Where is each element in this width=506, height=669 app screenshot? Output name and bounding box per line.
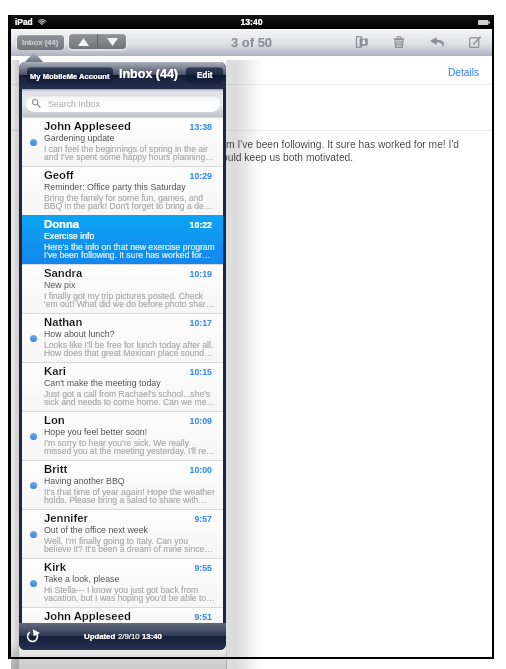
staticText: 9:57 (22, 514, 212, 524)
staticText: holds. Please bring a salad to share wit… (44, 495, 207, 505)
staticText: 10:17 (22, 318, 212, 328)
staticText: vacation, but I was hoping you'd be able… (44, 593, 215, 603)
staticText: 9:55 (22, 563, 212, 573)
staticText: Nathan (44, 316, 83, 329)
staticText: I can feel the beginnings of spring in t… (44, 144, 208, 154)
staticText: It's that time of year again! Hope the w… (44, 487, 215, 497)
staticText: Kari (44, 365, 66, 378)
staticText: 10:19 (22, 269, 212, 279)
staticText: 3 of 50 (11, 35, 492, 50)
staticText: 10:09 (22, 416, 212, 426)
staticText: 10:22 (22, 220, 212, 230)
staticText: 13:40 (11, 17, 492, 27)
staticText: John Appleseed (44, 610, 131, 623)
button[interactable]: Edit (186, 67, 223, 84)
staticText: Exercise info (44, 231, 95, 241)
staticText: Take a look, please (44, 574, 120, 584)
staticText: Looks like I'll be free for lunch today … (44, 340, 214, 350)
staticText: 9:51 (22, 612, 212, 622)
staticText: Kirk (44, 561, 66, 574)
staticText: iPad (15, 17, 33, 26)
staticText: Sandra (44, 267, 83, 280)
button[interactable]: Sandra (22, 264, 223, 313)
staticText: love it if you'd like to come along too,… (31, 152, 354, 163)
button[interactable]: Kirk (22, 558, 223, 607)
staticText: Hi Stella--- I know you just got back fr… (44, 585, 199, 595)
button[interactable]: Jennifer (22, 509, 223, 558)
staticText: Inbox (44) (119, 67, 179, 81)
staticText: 10:00 (22, 465, 212, 475)
staticText: How does that great Mexican place sound… (44, 348, 213, 358)
staticText: Reminder: Office party this Saturday (44, 182, 186, 192)
staticText: 10:29 (22, 171, 212, 181)
staticText: 'em out! What did we do before photo sha… (44, 299, 215, 309)
staticText: New pix (44, 280, 76, 290)
button[interactable]: Donna (22, 215, 223, 264)
staticText: Here's the info on that new exercise pro… (31, 139, 460, 150)
staticText: believe it? It's been a dream of mine si… (44, 544, 213, 554)
staticText: Well, I'm finally going to Italy. Can yo… (44, 536, 189, 546)
button[interactable]: Details (432, 64, 480, 80)
button[interactable]: Lon (22, 411, 223, 460)
staticText: Search Inbox (48, 99, 100, 109)
button[interactable]: Geoff (22, 166, 223, 215)
button[interactable]: Previous message (69, 34, 97, 49)
button[interactable]: Britt (22, 460, 223, 509)
button[interactable]: Compose (464, 31, 486, 53)
staticText: missed you at the meeting yesterday. I'l… (44, 446, 215, 456)
button[interactable]: Refresh (23, 627, 42, 646)
button[interactable]: Next message (98, 34, 126, 49)
staticText: Inbox (44) (22, 38, 59, 47)
staticText: Lon (44, 414, 65, 427)
staticText: How about lunch? (44, 329, 115, 339)
staticText: Having another BBQ (44, 476, 125, 486)
staticText: Here's the info on that new exercise pro… (44, 242, 215, 252)
staticText: I finally got my trip pictures posted. C… (44, 291, 204, 301)
staticText: Jennifer (44, 512, 88, 525)
staticText: John Appleseed (44, 120, 131, 133)
button[interactable]: Inbox (44) (16, 34, 65, 50)
button[interactable]: Delete (388, 31, 410, 53)
button[interactable]: My MobileMe Account (27, 67, 113, 84)
button[interactable]: John Appleseed (22, 607, 223, 624)
staticText: I've been following. It sure has worked … (44, 250, 211, 260)
staticText: 2/9/10 (118, 632, 142, 641)
staticText: Out of the office next week (44, 525, 148, 535)
staticText: I'm sorry to hear you're sick. We really (44, 438, 189, 448)
button[interactable]: Search Inbox (26, 95, 220, 112)
staticText: 10:15 (22, 367, 212, 377)
staticText: and I've spent some happy hours planning… (44, 152, 214, 162)
staticText: BBQ in the park! Don't forget to bring a… (44, 201, 213, 211)
staticText: Geoff (44, 169, 74, 182)
staticText: Updated (84, 632, 118, 641)
button[interactable]: Kari (22, 362, 223, 411)
button[interactable]: John Appleseed (22, 117, 223, 166)
staticText: Details (448, 67, 480, 78)
staticText: Just got a call from Rachael's school...… (44, 389, 211, 399)
staticText: sick and needs to come home. Can we me… (44, 397, 216, 407)
staticText: Bring the family for some fun, games, an… (44, 193, 204, 203)
button[interactable]: Reply (426, 31, 448, 53)
staticText: 13:40 (142, 632, 162, 641)
staticText: Edit (197, 71, 213, 80)
staticText: Donna (44, 218, 80, 231)
button[interactable]: Nathan (22, 313, 223, 362)
staticText: Can't make the meeting today (44, 378, 161, 388)
staticText: My MobileMe Account (30, 72, 110, 80)
staticText: Britt (44, 463, 68, 476)
staticText: Gardening update (44, 133, 115, 143)
staticText: 13:38 (22, 122, 212, 132)
staticText: Hope you feel better soon! (44, 427, 148, 437)
button[interactable]: Move to folder (351, 31, 373, 53)
